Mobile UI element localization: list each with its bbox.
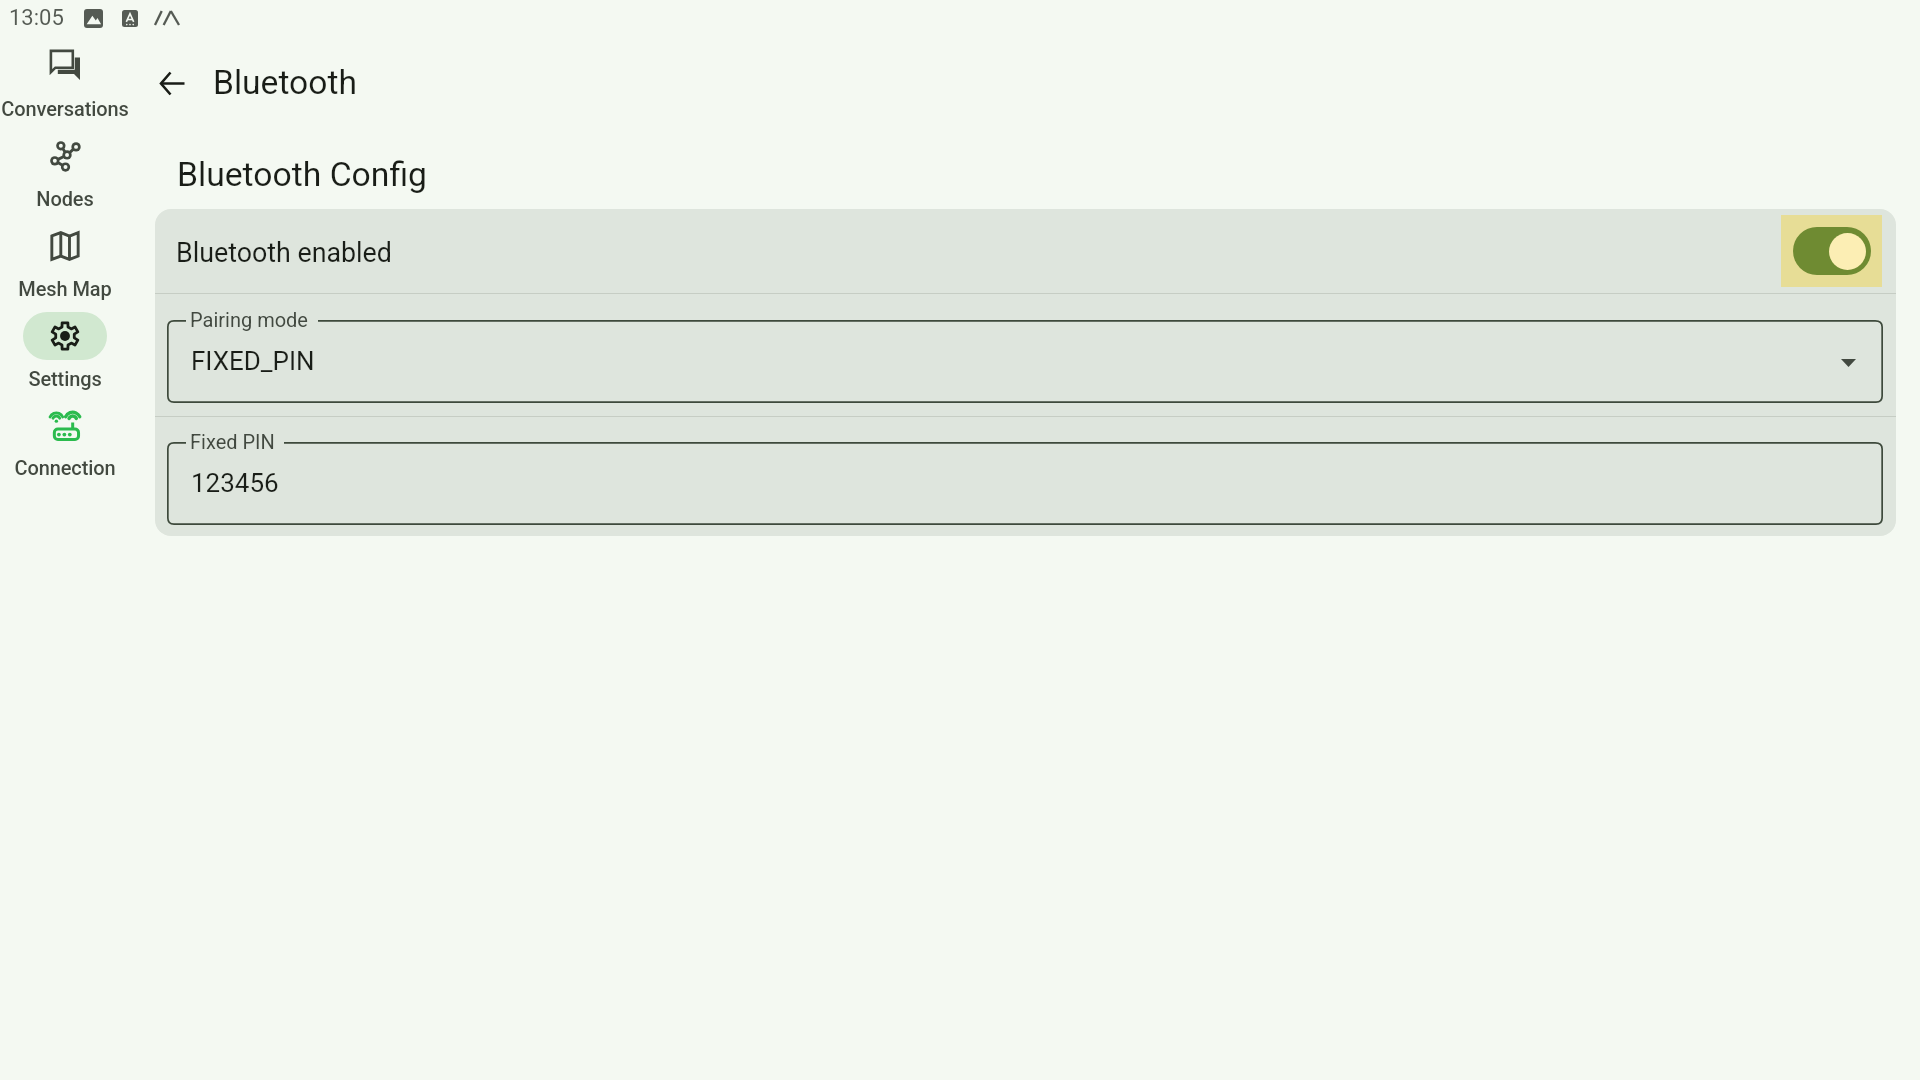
button[interactable]: Back [148, 59, 196, 107]
staticText: Pairing mode [190, 308, 308, 331]
button[interactable]: Settings [0, 312, 130, 384]
staticText: Settings [28, 367, 102, 390]
staticText: Nodes [36, 187, 94, 210]
staticText: Bluetooth enabled [176, 237, 392, 268]
button[interactable]: FIXED_PIN [167, 320, 1883, 403]
button[interactable]: Nodes [0, 132, 130, 204]
button[interactable]: Bluetooth enabled [155, 209, 1896, 293]
staticText: Fixed PIN [190, 430, 275, 453]
button[interactable]: Bluetooth enabled toggle [1781, 215, 1882, 287]
staticText: FIXED_PIN [191, 346, 315, 376]
button[interactable]: Mesh Map [0, 222, 130, 294]
staticText: Bluetooth [213, 63, 357, 102]
button[interactable]: Connection [0, 401, 130, 473]
staticText: Mesh Map [18, 277, 112, 300]
staticText: Conversations [1, 97, 129, 120]
staticText: Bluetooth Config [177, 155, 427, 194]
button[interactable]: Conversations [0, 41, 130, 113]
staticText: Connection [14, 456, 116, 479]
staticText: 123456 [191, 468, 279, 498]
staticText: 13:05 [9, 5, 64, 31]
button[interactable]: 123456 [167, 442, 1883, 525]
